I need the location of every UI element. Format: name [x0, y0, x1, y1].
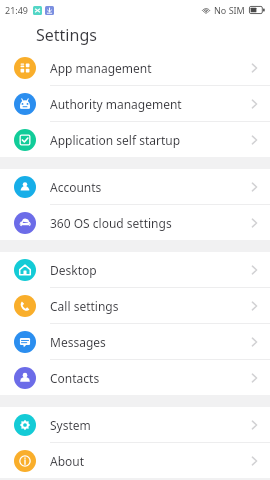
staticText: Messages [50, 334, 106, 350]
button[interactable]: About [0, 443, 270, 478]
staticText: Authority management [50, 96, 182, 112]
button[interactable]: System [0, 407, 270, 442]
staticText: 21:49 [5, 4, 29, 16]
button[interactable]: 360 OS cloud settings [0, 205, 270, 240]
staticText: App management [50, 60, 152, 76]
button[interactable]: App management [0, 50, 270, 85]
button[interactable]: Application self startup [0, 122, 270, 157]
button[interactable]: Contacts [0, 360, 270, 395]
staticText: About [50, 453, 85, 469]
staticText: 360 OS cloud settings [50, 215, 172, 231]
button[interactable]: Accounts [0, 169, 270, 204]
button[interactable]: Authority management [0, 86, 270, 121]
staticText: Desktop [50, 262, 97, 278]
button[interactable]: Messages [0, 324, 270, 359]
button[interactable]: Desktop [0, 252, 270, 287]
staticText: Accounts [50, 179, 102, 195]
button[interactable]: Call settings [0, 288, 270, 323]
staticText: No SIM [214, 4, 245, 16]
staticText: Call settings [50, 298, 119, 314]
staticText: Application self startup [50, 132, 181, 148]
staticText: Settings [36, 24, 97, 46]
staticText: Contacts [50, 370, 100, 386]
staticText: System [50, 417, 91, 433]
